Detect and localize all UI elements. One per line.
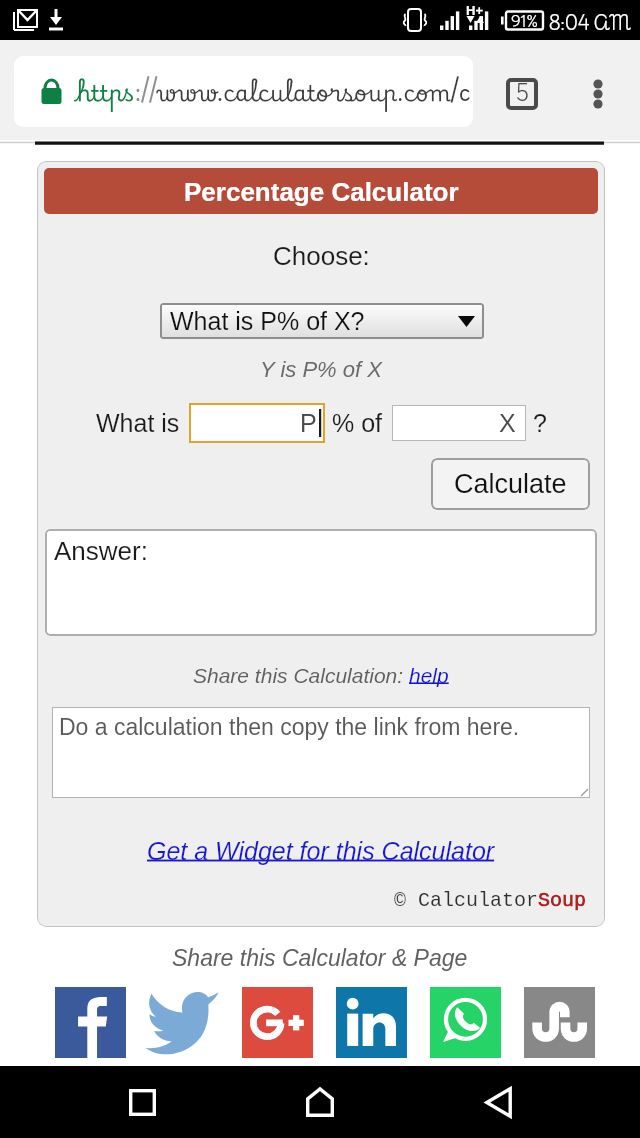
button[interactable]: More options (576, 66, 620, 122)
staticText: © CalculatorSoup (394, 889, 587, 912)
staticText: help (409, 664, 449, 687)
button[interactable]: help (409, 664, 449, 687)
button[interactable]: Share on Google Plus (242, 987, 313, 1058)
button[interactable]: Recent apps (106, 1066, 178, 1138)
button[interactable]: Share on Facebook (55, 987, 126, 1058)
staticText: P (300, 409, 317, 437)
staticText: What is (96, 409, 180, 437)
button[interactable]: P (189, 403, 325, 443)
staticText: Get a Widget for this Calculator (147, 837, 495, 865)
button[interactable]: What is P% of X? (160, 303, 484, 339)
staticText: What is P% of X? (170, 307, 365, 335)
button[interactable]: Get a Widget for this Calculator (147, 837, 495, 865)
staticText: Choose: (273, 241, 370, 270)
button[interactable]: Share on WhatsApp (430, 987, 501, 1058)
button[interactable]: Home (284, 1066, 356, 1138)
staticText: 5 (516, 77, 529, 110)
button[interactable]: Answer: (45, 529, 597, 636)
staticText: 91% (511, 10, 538, 29)
staticText: Do a calculation then copy the link from… (59, 714, 520, 740)
staticText: Percentage Calculator (184, 177, 459, 206)
button[interactable]: Share on Twitter (148, 987, 219, 1058)
staticText: ? (533, 409, 547, 437)
staticText: % of (332, 409, 383, 437)
staticText: Answer: (54, 536, 148, 565)
button[interactable]: X (392, 405, 526, 441)
button[interactable]: Tabs (495, 67, 549, 121)
staticText: Y is P% of X (260, 357, 382, 382)
staticText: X (499, 409, 516, 437)
staticText: Share this Calculation: (193, 664, 409, 687)
button[interactable]: Do a calculation then copy the link from… (52, 707, 590, 798)
button[interactable]: Share on LinkedIn (336, 987, 407, 1058)
button[interactable]: https://www.calculatorsoup.com/c (14, 56, 473, 127)
button[interactable]: Share on StumbleUpon (524, 987, 595, 1058)
button[interactable]: Calculate (431, 458, 590, 510)
staticText: Share this Calculator & Page (172, 945, 468, 971)
button[interactable]: Back (462, 1066, 534, 1138)
staticText: 8:04 AM (549, 9, 632, 38)
staticText: H+ (466, 3, 483, 18)
button[interactable]: Percentage Calculator (44, 168, 598, 214)
staticText: https://www.calculatorsoup.com/c (76, 70, 473, 113)
staticText: Calculate (454, 469, 567, 499)
